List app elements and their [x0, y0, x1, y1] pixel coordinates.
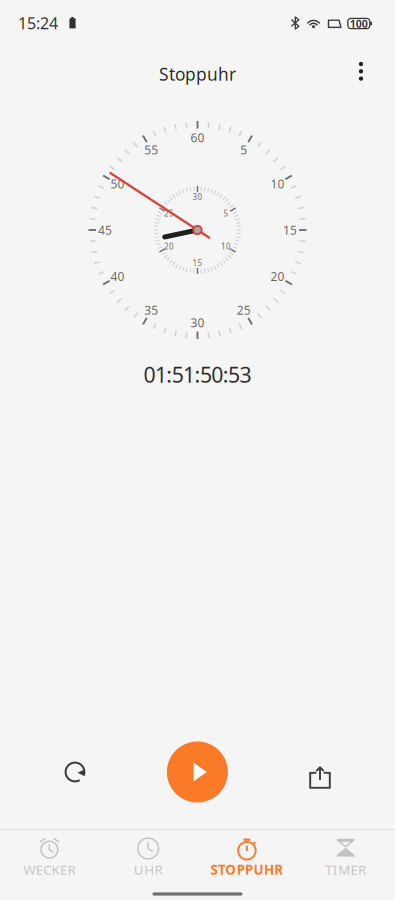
- staticText: STOPPUHR: [210, 861, 283, 878]
- staticText: 10: [271, 176, 285, 192]
- staticText: WECKER: [23, 861, 75, 878]
- button[interactable]: WECKER: [0, 830, 99, 900]
- staticText: UHR: [134, 861, 162, 878]
- staticText: 55: [144, 142, 158, 158]
- button[interactable]: Share: [289, 743, 351, 805]
- staticText: 50: [110, 176, 124, 192]
- button[interactable]: More options: [338, 47, 384, 95]
- button[interactable]: Start: [167, 741, 228, 802]
- staticText: 15: [192, 258, 202, 268]
- staticText: 20: [164, 241, 174, 252]
- staticText: 10: [221, 241, 231, 252]
- button[interactable]: TIMER: [296, 830, 395, 900]
- staticText: 25: [237, 302, 251, 318]
- staticText: 30: [190, 314, 204, 330]
- staticText: 15: [283, 222, 297, 238]
- staticText: 25: [164, 208, 174, 219]
- staticText: Stoppuhr: [159, 62, 236, 85]
- staticText: 35: [144, 302, 158, 318]
- staticText: 01:51:50:53: [143, 360, 251, 389]
- staticText: 5: [240, 142, 247, 158]
- staticText: 20: [271, 268, 285, 284]
- button[interactable]: Reset: [44, 741, 106, 803]
- staticText: 60: [190, 129, 204, 145]
- staticText: TIMER: [325, 861, 366, 878]
- staticText: 30: [192, 192, 202, 202]
- staticText: 100: [350, 16, 368, 31]
- staticText: 40: [110, 268, 124, 284]
- staticText: 15:24: [18, 12, 58, 34]
- button[interactable]: STOPPUHR: [197, 830, 296, 900]
- button[interactable]: UHR: [99, 830, 198, 900]
- staticText: 45: [98, 222, 112, 238]
- staticText: 5: [224, 208, 229, 219]
